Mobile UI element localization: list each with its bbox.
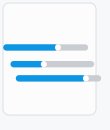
button[interactable]: Slider xyxy=(0,0,110,130)
button[interactable]: Slider xyxy=(0,0,110,130)
button[interactable]: Slider xyxy=(0,0,110,130)
